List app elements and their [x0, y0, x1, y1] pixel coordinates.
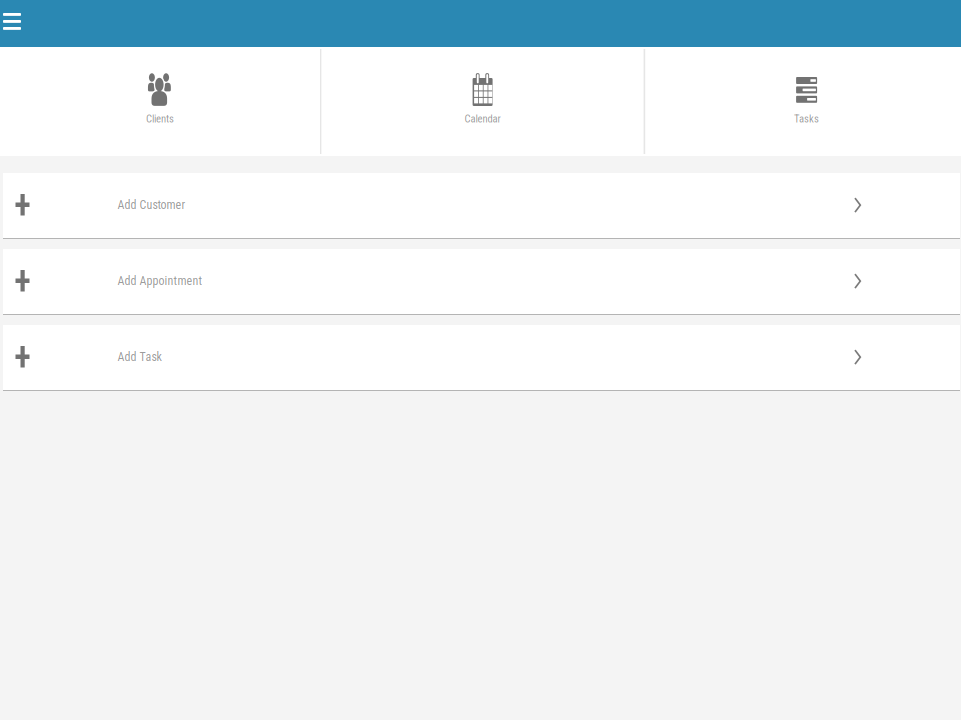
button[interactable]: Menu: [0, 0, 44, 47]
staticText: Add Customer: [117, 198, 185, 212]
button[interactable]: Clients: [0, 47, 320, 156]
staticText: Add Task: [117, 350, 161, 364]
staticText: Tasks: [794, 112, 819, 125]
button[interactable]: Add Appointment: [0, 249, 961, 315]
staticText: Add Appointment: [117, 274, 202, 288]
staticText: Calendar: [465, 112, 501, 125]
button[interactable]: Tasks: [652, 47, 961, 156]
button[interactable]: Add Customer: [0, 173, 961, 239]
button[interactable]: Calendar: [322, 47, 644, 156]
staticText: Clients: [146, 112, 174, 125]
button[interactable]: Add Task: [0, 325, 961, 391]
